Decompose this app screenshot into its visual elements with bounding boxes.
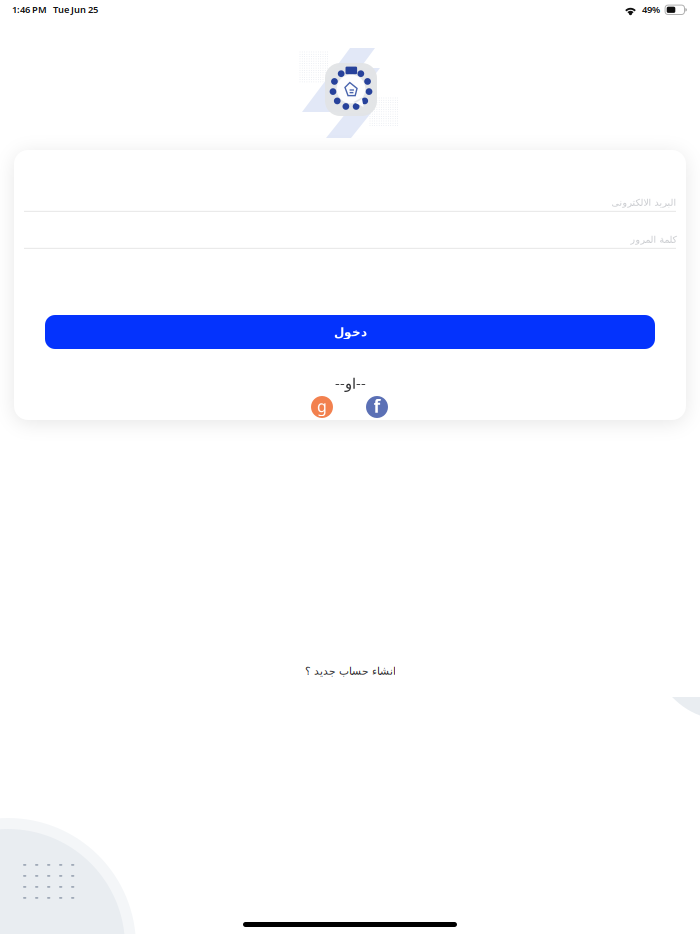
staticText: 1:46 PM (12, 3, 47, 16)
button[interactable]: Sign in with Google (311, 396, 333, 418)
button[interactable]: كلمة المرور (24, 227, 676, 249)
staticText: Tue Jun 25 (47, 3, 98, 16)
staticText: كلمة المرور (630, 234, 676, 245)
button[interactable]: انشاء حساب جديد ؟ (298, 659, 401, 683)
staticText: f (373, 394, 380, 417)
staticText: --او-- (334, 373, 365, 393)
button[interactable]: Sign in with Facebook (366, 396, 388, 418)
staticText: 49% (638, 3, 660, 16)
staticText: البريد الالكترونى (611, 197, 676, 208)
button[interactable]: دخول (45, 315, 655, 349)
staticText: دخول (333, 325, 366, 339)
button[interactable]: البريد الالكترونى (24, 190, 676, 212)
staticText: انشاء حساب جديد ؟ (304, 665, 395, 677)
staticText: g (317, 395, 327, 417)
